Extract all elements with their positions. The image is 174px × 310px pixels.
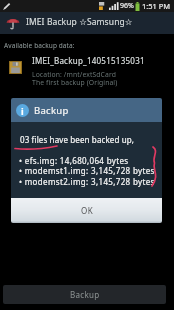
staticText: 03 files have been backed up, — [20, 134, 135, 145]
staticText: 96% — [120, 1, 134, 11]
staticText: Available backup data: — [4, 41, 75, 50]
staticText: Backup — [34, 104, 69, 117]
button[interactable]: OK — [11, 198, 162, 223]
staticText: IMEI_Backup_140515135031 — [32, 55, 145, 66]
staticText: Location: /mnt/extSdCard — [32, 70, 116, 79]
staticText: • efs.img: 14,680,064 bytes — [19, 155, 129, 166]
staticText: IMEI Backup ☆Samsung☆ — [26, 16, 133, 28]
button[interactable]: Backup — [3, 285, 166, 304]
other: App icon — [6, 16, 20, 30]
staticText: Backup — [70, 289, 100, 300]
staticText: i — [21, 105, 24, 117]
staticText: • modemst2.img: 3,145,728 bytes — [19, 176, 155, 187]
staticText: 1:51 PM — [142, 1, 171, 11]
staticText: • modemst1.img: 3,145,728 bytes — [19, 165, 155, 176]
staticText: OK — [81, 205, 93, 216]
staticText: The first backup (Original) — [32, 78, 118, 87]
